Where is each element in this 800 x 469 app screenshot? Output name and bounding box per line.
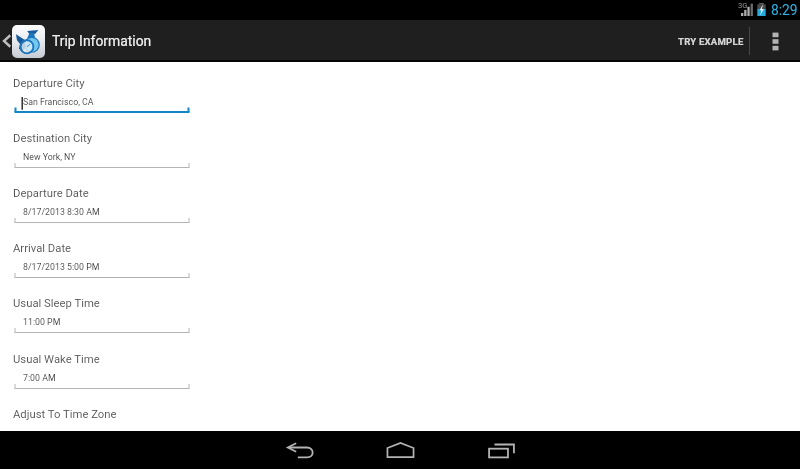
button[interactable]: 8/17/2013 8:30 AM	[13, 206, 190, 223]
staticText: Departure City	[13, 77, 85, 90]
button[interactable]: Recent apps	[461, 431, 541, 469]
staticText: Trip Information	[52, 33, 152, 49]
staticText: TRY EXAMPLE	[678, 36, 744, 47]
button[interactable]: 11:00 PM	[13, 316, 190, 333]
button[interactable]: 8/17/2013 5:00 PM	[13, 261, 190, 278]
staticText: New York, NY	[23, 152, 76, 162]
staticText: San Francisco, CA	[23, 97, 94, 107]
staticText: 7:00 AM	[23, 373, 56, 383]
button[interactable]: Home	[360, 431, 440, 469]
staticText: Destination City	[13, 132, 93, 145]
staticText: Arrival Date	[13, 242, 72, 255]
other: Navigate up	[2, 33, 11, 49]
staticText: 8/17/2013 5:00 PM	[23, 262, 100, 272]
staticText: 8/17/2013 8:30 AM	[23, 207, 100, 217]
button[interactable]: Back	[260, 431, 340, 469]
button[interactable]: New York, NY	[13, 151, 190, 168]
staticText: Usual Sleep Time	[13, 297, 100, 310]
button[interactable]: Navigate up	[0, 20, 165, 62]
staticText: 8:29	[771, 2, 798, 18]
staticText: Usual Wake Time	[13, 353, 100, 366]
button[interactable]: TRY EXAMPLE	[646, 20, 749, 62]
button[interactable]: San Francisco, CA	[13, 96, 190, 113]
staticText: Adjust To Time Zone	[13, 408, 117, 421]
button[interactable]: 7:00 AM	[13, 372, 190, 389]
button[interactable]: More options	[750, 20, 800, 62]
staticText: Departure Date	[13, 187, 89, 200]
staticText: 11:00 PM	[23, 317, 61, 327]
staticText: 3G	[738, 1, 748, 10]
